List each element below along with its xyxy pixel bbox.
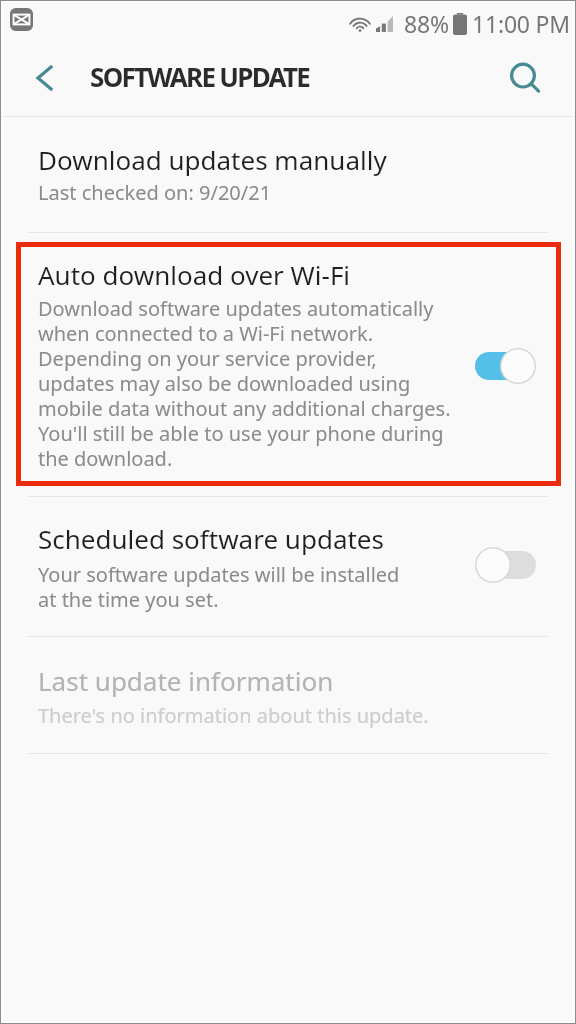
staticText: SOFTWARE UPDATE	[90, 59, 310, 94]
button[interactable]: Search	[502, 54, 548, 100]
button[interactable]: Switch off	[475, 547, 536, 583]
staticText: Auto download over Wi-Fi	[38, 257, 351, 292]
staticText: Download software updates automatically …	[38, 295, 451, 472]
button[interactable]: Back	[22, 57, 68, 103]
staticText: Your software updates will be installed …	[38, 561, 400, 613]
button[interactable]: Auto download over Wi-Fi	[3, 233, 573, 496]
staticText: 88%	[404, 8, 449, 39]
button[interactable]: Switch on	[475, 348, 536, 384]
staticText: There's no information about this update…	[38, 702, 429, 729]
button[interactable]: Download updates manually	[3, 120, 573, 230]
staticText: Download updates manually	[38, 142, 387, 177]
staticText: Last checked on: 9/20/21	[38, 179, 272, 206]
staticText: Scheduled software updates	[38, 521, 384, 556]
button[interactable]: Scheduled software updates	[3, 498, 573, 637]
staticText: 11:00 PM	[472, 8, 570, 39]
staticText: Last update information	[38, 663, 334, 698]
